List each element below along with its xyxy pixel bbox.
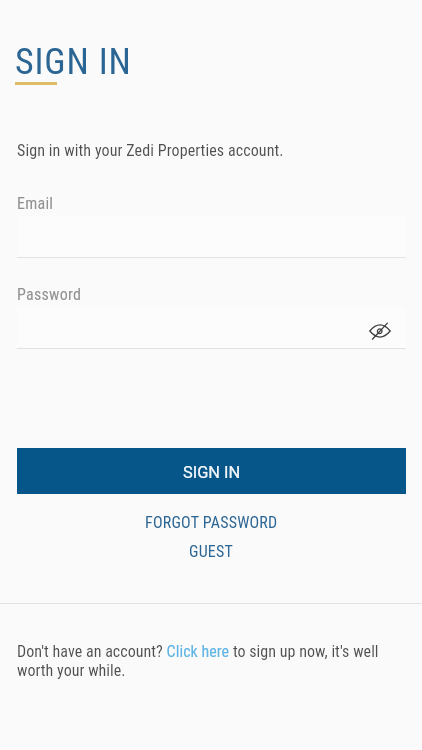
- staticText: SIGN IN: [183, 463, 241, 482]
- button[interactable]: GUEST: [0, 538, 422, 564]
- staticText: Sign in with your Zedi Properties accoun…: [17, 141, 284, 160]
- staticText: Email: [17, 194, 54, 213]
- button[interactable]: Don't have an account? Click here to sig…: [17, 642, 389, 680]
- button[interactable]: Password input: [17, 307, 406, 349]
- staticText: Don't have an account? Click here to sig…: [17, 642, 389, 680]
- button[interactable]: Show password: [364, 315, 396, 347]
- staticText: GUEST: [189, 542, 234, 561]
- button[interactable]: Email input: [17, 216, 406, 258]
- button[interactable]: SIGN IN: [17, 448, 406, 494]
- staticText: SIGN IN: [15, 41, 132, 83]
- button[interactable]: FORGOT PASSWORD: [0, 509, 422, 535]
- staticText: FORGOT PASSWORD: [145, 513, 278, 532]
- staticText: Password: [17, 285, 82, 304]
